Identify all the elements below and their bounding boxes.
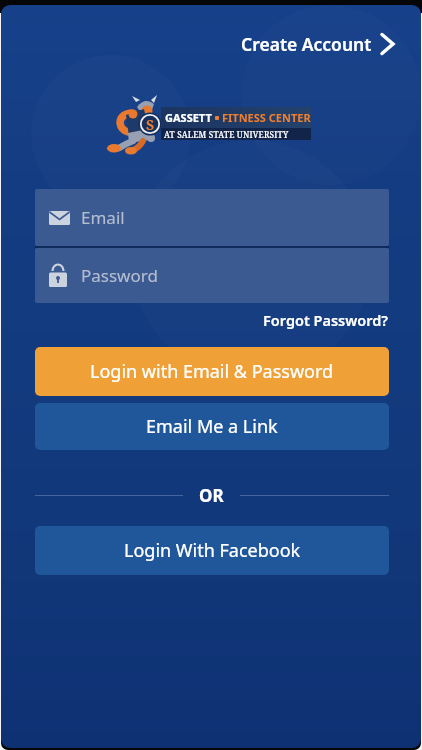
staticText: OR <box>199 484 224 507</box>
staticText: AT SALEM STATE UNIVERSITY <box>164 129 289 140</box>
staticText: Login With Facebook <box>124 538 301 563</box>
button[interactable]: Password <box>35 248 389 303</box>
staticText: FITNESS CENTER <box>222 110 311 125</box>
staticText: GASSETT <box>165 110 212 125</box>
staticText: Password <box>81 264 158 287</box>
button[interactable]: Login With Facebook <box>35 526 389 575</box>
button[interactable]: Login with Email & Password <box>35 347 389 396</box>
button[interactable]: Forgot Password? <box>253 308 389 331</box>
button[interactable]: Create Account <box>241 32 393 56</box>
button[interactable]: Email <box>35 189 389 246</box>
staticText: Email Me a Link <box>146 414 278 439</box>
staticText: Create Account <box>241 32 372 56</box>
staticText: Forgot Password? <box>263 310 389 330</box>
button[interactable]: Email Me a Link <box>35 403 389 450</box>
staticText: Email <box>81 206 125 229</box>
staticText: Login with Email & Password <box>90 359 334 384</box>
staticText: S <box>146 115 155 134</box>
